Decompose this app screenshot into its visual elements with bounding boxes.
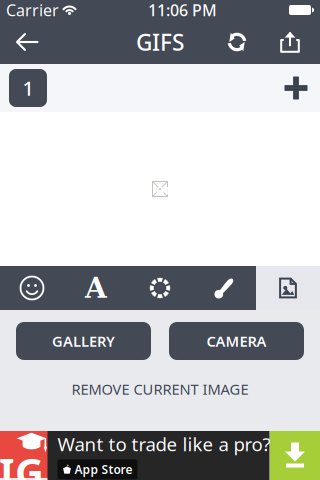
staticText: App Store xyxy=(74,461,132,477)
button[interactable]: Back xyxy=(3,20,51,64)
staticText: REMOVE CURRENT IMAGE xyxy=(71,379,248,399)
button[interactable]: Share xyxy=(266,20,314,64)
staticText: IG xyxy=(0,445,44,480)
button[interactable]: GALLERY xyxy=(16,322,151,360)
button[interactable]: Download xyxy=(270,431,320,480)
button[interactable]: Image xyxy=(256,266,320,310)
staticText: GALLERY xyxy=(52,331,115,351)
button[interactable]: Frames xyxy=(128,266,192,310)
staticText: to add xyxy=(137,179,183,199)
staticText: 1 xyxy=(22,75,33,101)
button[interactable]: Text xyxy=(64,266,128,310)
button[interactable]: 1 xyxy=(9,69,47,107)
button[interactable]: Tap here xyxy=(125,154,195,224)
staticText: GIFS xyxy=(136,27,184,57)
staticText: A xyxy=(85,272,107,304)
button[interactable]: REMOVE CURRENT IMAGE xyxy=(0,372,320,406)
button[interactable]: Refresh xyxy=(208,20,266,64)
staticText: Carrier xyxy=(6,0,59,21)
button[interactable]: Draw xyxy=(192,266,256,310)
image xyxy=(152,181,168,197)
button[interactable]: Stickers xyxy=(0,266,64,310)
button[interactable]: IG xyxy=(0,431,320,480)
staticText: 11:06 PM xyxy=(148,0,217,21)
staticText: CAMERA xyxy=(206,331,266,351)
staticText: Want to trade like a pro? xyxy=(57,432,270,456)
button[interactable]: Add frame xyxy=(274,66,318,110)
button[interactable]: CAMERA xyxy=(169,322,304,360)
